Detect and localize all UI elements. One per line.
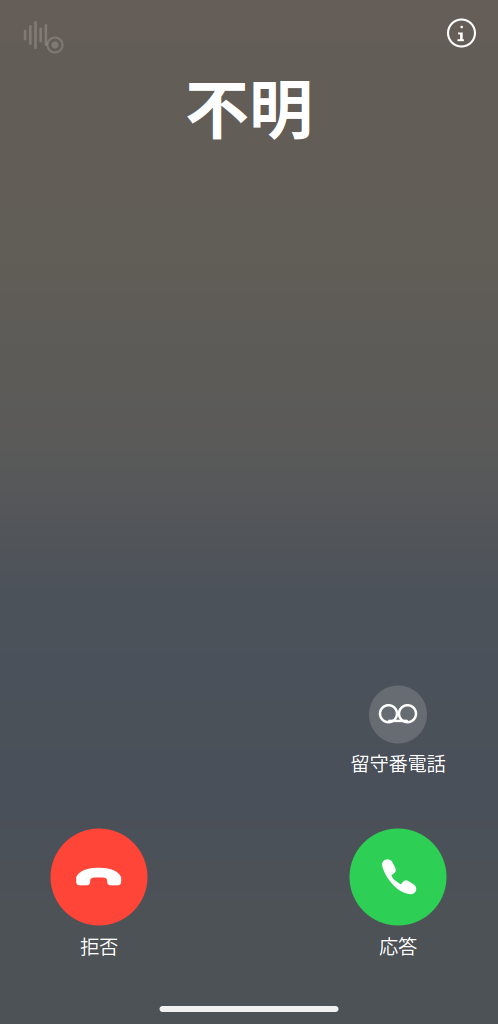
staticText: 不明 <box>185 59 313 151</box>
button[interactable]: Call details <box>439 11 483 55</box>
staticText: 留守番電話 <box>350 748 445 776</box>
staticText: 応答 <box>379 931 417 959</box>
staticText: 拒否 <box>80 931 118 959</box>
button[interactable]: 拒否 <box>50 828 147 959</box>
button[interactable]: 応答 <box>349 828 446 959</box>
button[interactable]: 留守番電話 <box>350 685 445 776</box>
